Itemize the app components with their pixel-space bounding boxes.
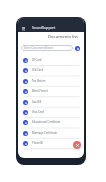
staticText: Tax Return (32, 79, 46, 83)
staticText: SoundSupport (32, 25, 56, 30)
staticText: Old Card (32, 68, 44, 72)
staticText: Gas Bill (32, 100, 42, 104)
staticText: Marriage Certificate (32, 131, 58, 135)
button[interactable]: Visa Card (18, 107, 84, 117)
button[interactable]: Work Permit (18, 86, 84, 96)
staticText: Photo ID (32, 141, 44, 145)
staticText: ID Card (32, 58, 42, 62)
button[interactable]: Open navigation menu (22, 26, 25, 30)
button[interactable]: Photo ID (18, 138, 84, 148)
button[interactable]: Educational Certificate (18, 117, 84, 127)
staticText: Educational Certificate (32, 120, 61, 124)
staticText: Visa Card (32, 110, 44, 114)
button[interactable]: Search (75, 46, 80, 51)
button[interactable]: Old Card (18, 65, 84, 75)
button[interactable]: Add document (73, 141, 81, 149)
button[interactable]: Enter Document Name (21, 45, 73, 51)
button[interactable]: Tax Return (18, 76, 84, 86)
button[interactable]: Marriage Certificate (18, 128, 84, 138)
button[interactable]: ID Card (18, 55, 84, 65)
staticText: Work Permit (32, 89, 48, 93)
staticText: Documents list (48, 34, 78, 40)
button[interactable]: Gas Bill (18, 97, 84, 107)
staticText: Enter Document Name (24, 46, 53, 50)
